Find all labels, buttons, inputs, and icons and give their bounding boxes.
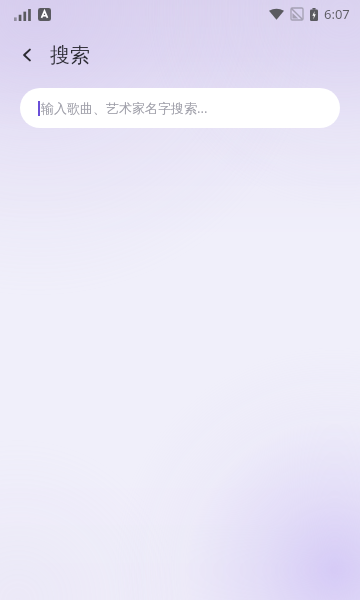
staticText: 6:07 (324, 5, 350, 23)
staticText: 搜索 (50, 43, 90, 68)
button[interactable]: 输入歌曲、艺术家名字搜索... (20, 88, 340, 128)
staticText: 输入歌曲、艺术家名字搜索... (41, 99, 208, 117)
button[interactable]: Back (12, 40, 42, 70)
